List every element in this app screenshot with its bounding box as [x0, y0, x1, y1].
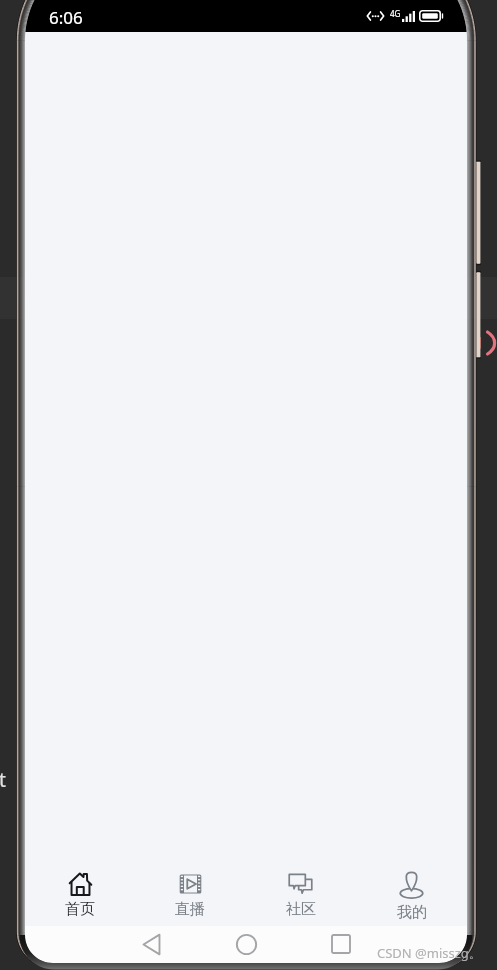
staticText: CSDN @misszg。 — [377, 944, 482, 962]
button[interactable]: Back — [137, 930, 165, 958]
staticText: 社区 — [286, 900, 316, 919]
button[interactable]: 直播 — [135, 848, 245, 919]
button[interactable]: Recent apps — [327, 930, 355, 958]
button[interactable]: 社区 — [245, 848, 356, 919]
staticText: 直播 — [175, 900, 205, 919]
staticText: 我的 — [397, 903, 427, 922]
button[interactable]: 首页 — [25, 848, 135, 919]
staticText: 4G — [390, 8, 401, 19]
staticText: 6:06 — [49, 6, 83, 29]
staticText: t — [0, 767, 6, 793]
button[interactable]: 我的 — [356, 848, 467, 924]
staticText: 首页 — [65, 900, 95, 919]
button[interactable]: Home — [232, 930, 260, 958]
